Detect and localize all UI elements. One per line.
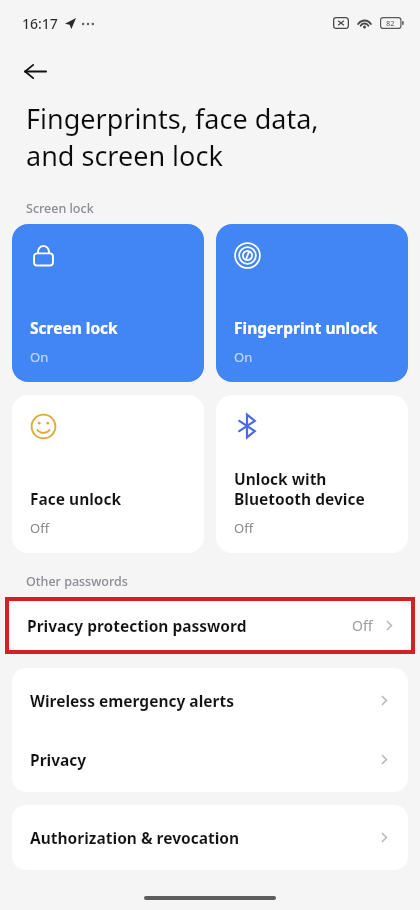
- staticText: Off: [234, 519, 254, 537]
- staticText: Face unlock: [30, 488, 122, 509]
- staticText: Authorization & revocation: [30, 827, 240, 848]
- staticText: 82: [386, 18, 395, 28]
- staticText: Screen lock: [30, 317, 118, 338]
- staticText: Unlock with Bluetooth device: [234, 468, 365, 509]
- button[interactable]: Authorization & revocation: [12, 808, 408, 867]
- staticText: 16:17: [22, 14, 58, 33]
- button[interactable]: Wireless emergency alerts: [12, 671, 408, 730]
- staticText: On: [30, 348, 49, 366]
- staticText: Off: [352, 616, 373, 635]
- button[interactable]: Privacy: [12, 730, 408, 789]
- staticText: Off: [30, 519, 50, 537]
- button[interactable]: Face unlock: [12, 395, 204, 553]
- staticText: Wireless emergency alerts: [30, 690, 234, 711]
- staticText: Other passwords: [26, 573, 128, 590]
- staticText: Privacy protection password: [27, 615, 247, 636]
- staticText: Fingerprint unlock: [234, 317, 378, 338]
- staticText: Fingerprints, face data,: [26, 100, 319, 137]
- button[interactable]: Screen lock: [12, 224, 204, 382]
- button[interactable]: Privacy protection password: [9, 601, 411, 650]
- button[interactable]: Fingerprint unlock: [216, 224, 408, 382]
- staticText: On: [234, 348, 253, 366]
- button[interactable]: Back: [10, 46, 60, 96]
- staticText: and screen lock: [26, 137, 223, 174]
- staticText: Screen lock: [26, 200, 94, 217]
- button[interactable]: Unlock with Bluetooth device: [216, 395, 408, 553]
- staticText: Privacy: [30, 749, 87, 770]
